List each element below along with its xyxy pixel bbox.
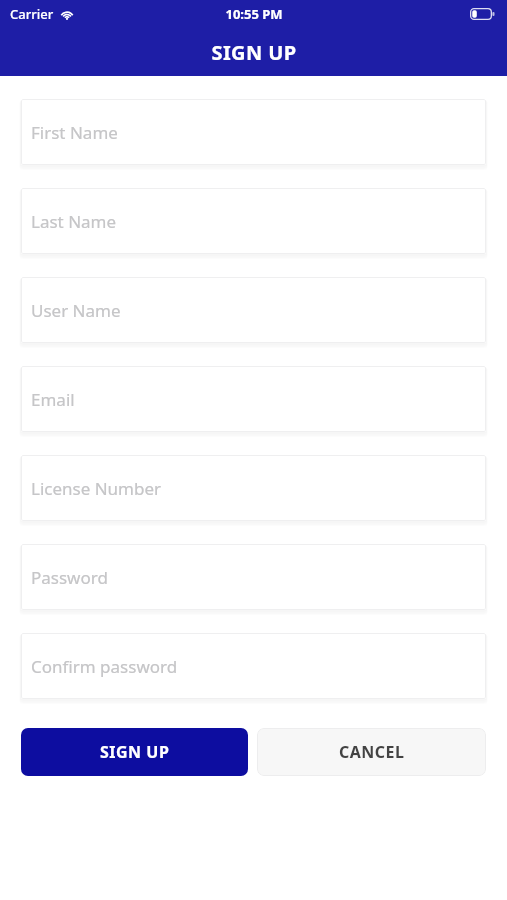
button[interactable]: Password [21, 544, 486, 610]
staticText: Carrier [10, 5, 54, 23]
staticText: SIGN UP [211, 39, 297, 66]
staticText: SIGN UP [100, 741, 170, 763]
button[interactable]: CANCEL [257, 728, 486, 776]
staticText: Password [31, 566, 108, 589]
button[interactable]: Confirm password [21, 633, 486, 699]
button[interactable]: First Name [21, 99, 486, 165]
staticText: Last Name [31, 210, 117, 233]
staticText: Email [31, 388, 75, 411]
button[interactable]: Last Name [21, 188, 486, 254]
staticText: First Name [31, 121, 118, 144]
staticText: License Number [31, 477, 162, 500]
button[interactable]: License Number [21, 455, 486, 521]
button[interactable]: SIGN UP [21, 728, 248, 776]
button[interactable]: Email [21, 366, 486, 432]
button[interactable]: User Name [21, 277, 486, 343]
staticText: CANCEL [339, 741, 405, 763]
staticText: User Name [31, 299, 121, 322]
staticText: 10:55 PM [225, 5, 283, 23]
staticText: Confirm password [31, 655, 178, 678]
